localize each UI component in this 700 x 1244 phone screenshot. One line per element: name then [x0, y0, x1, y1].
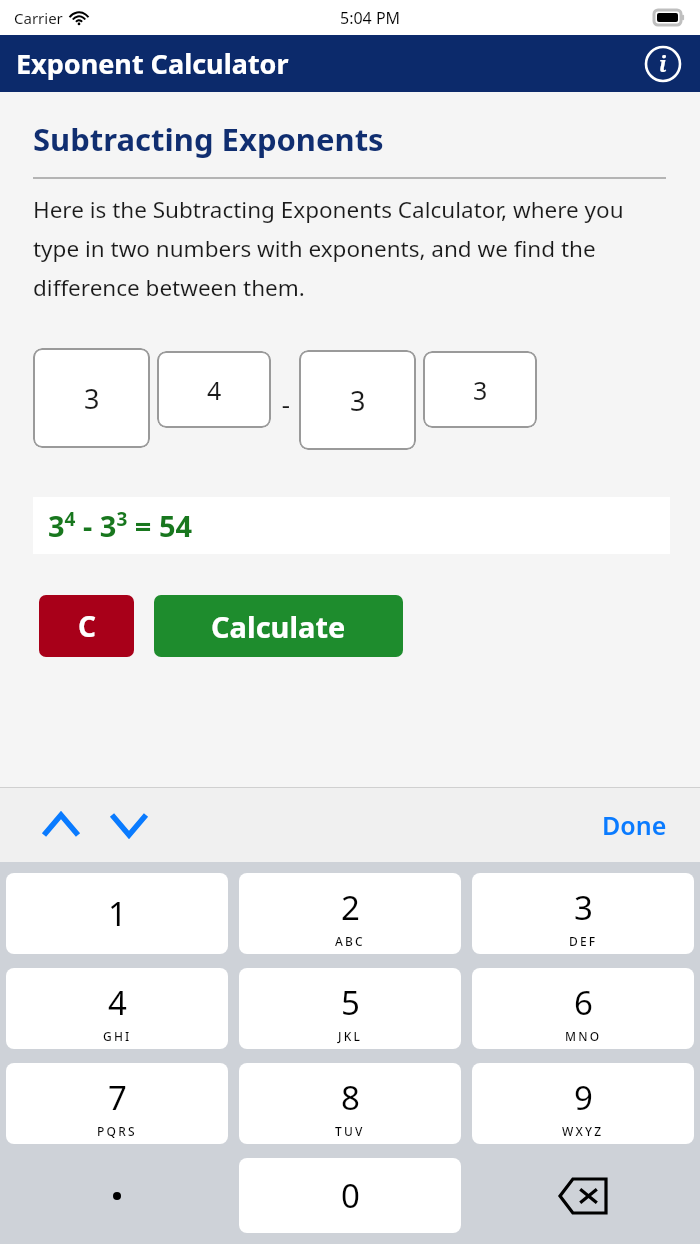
staticText: 9 — [574, 1075, 593, 1120]
button[interactable]: Info — [643, 44, 683, 84]
staticText: GHI — [103, 1028, 132, 1044]
staticText: Here is the Subtracting Exponents Calcul… — [33, 194, 660, 302]
staticText: ABC — [335, 933, 365, 949]
staticText: 4 — [207, 373, 222, 407]
staticText: Subtracting Exponents — [33, 118, 384, 160]
staticText: MNO — [565, 1028, 602, 1044]
staticText: Carrier — [14, 8, 63, 28]
staticText: 5 — [341, 980, 360, 1025]
staticText: Calculate — [211, 607, 346, 646]
button[interactable]: Delete — [472, 1158, 694, 1233]
button[interactable]: 7 — [6, 1063, 228, 1144]
staticText: 4 — [108, 980, 127, 1025]
staticText: 34 - 33 = 54 — [48, 506, 193, 545]
staticText: 2 — [341, 885, 360, 930]
button[interactable]: 0 — [239, 1158, 461, 1233]
staticText: 1 — [108, 891, 127, 936]
button[interactable]: Previous field — [38, 802, 84, 848]
button[interactable]: Next field — [106, 802, 152, 848]
staticText: TUV — [335, 1123, 365, 1139]
button[interactable]: 2 — [239, 873, 461, 954]
staticText: 3 — [84, 380, 100, 417]
staticText: 3 — [350, 382, 366, 419]
staticText: Exponent Calculator — [16, 45, 289, 82]
button[interactable]: Decimal point — [6, 1158, 228, 1233]
button[interactable]: 6 — [472, 968, 694, 1049]
staticText: Done — [602, 808, 667, 842]
staticText: DEF — [569, 933, 598, 949]
button[interactable]: 5 — [239, 968, 461, 1049]
button[interactable]: 3 — [299, 350, 416, 450]
staticText: i — [659, 50, 667, 79]
button[interactable]: Done — [596, 800, 673, 850]
staticText: 8 — [341, 1075, 360, 1120]
button[interactable]: 1 — [6, 873, 228, 954]
staticText: 5:04 PM — [340, 7, 401, 29]
staticText: C — [78, 607, 96, 645]
button[interactable]: 3 — [472, 873, 694, 954]
staticText: 3 — [473, 373, 488, 407]
staticText: 0 — [341, 1173, 360, 1218]
button[interactable]: C — [39, 595, 134, 657]
staticText: 6 — [574, 980, 593, 1025]
button[interactable]: 8 — [239, 1063, 461, 1144]
staticText: JKL — [338, 1028, 363, 1044]
staticText: WXYZ — [562, 1123, 604, 1139]
button[interactable]: 4 — [157, 351, 271, 428]
button[interactable]: 3 — [423, 351, 537, 428]
button[interactable]: 4 — [6, 968, 228, 1049]
staticText: 7 — [108, 1075, 127, 1120]
button[interactable]: Calculate — [154, 595, 403, 657]
button[interactable]: 3 — [33, 348, 150, 448]
staticText: - — [282, 388, 290, 408]
staticText: 3 — [574, 885, 593, 930]
staticText: PQRS — [97, 1123, 137, 1139]
button[interactable]: 9 — [472, 1063, 694, 1144]
